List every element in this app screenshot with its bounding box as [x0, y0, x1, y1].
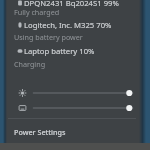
- staticText: Power Settings: [14, 127, 66, 137]
- staticText: Logitech, Inc. M325 70%: [24, 20, 112, 30]
- button[interactable]: Screen brightness: [5, 86, 141, 100]
- staticText: Laptop battery 10%: [24, 46, 95, 56]
- button[interactable]: DPQN2431 Bq2024S1 99%: [5, 0, 141, 8]
- staticText: DPQN2431 Bq2024S1 99%: [24, 0, 119, 8]
- button[interactable]: Keyboard brightness: [5, 101, 141, 115]
- staticText: Charging: [14, 59, 46, 69]
- button[interactable]: Power Settings: [5, 125, 141, 138]
- staticText: Using battery power: [14, 32, 83, 42]
- staticText: Fully charged: [14, 7, 60, 17]
- button[interactable]: Logitech, Inc. M325 70%: [5, 19, 141, 30]
- button[interactable]: Laptop battery 10%: [5, 45, 141, 56]
